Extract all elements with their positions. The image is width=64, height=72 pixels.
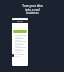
button[interactable] — [13, 50, 27, 53]
button[interactable] — [13, 41, 27, 44]
button[interactable] — [13, 47, 27, 50]
staticText: Turn your idea into a real business — [22, 4, 43, 15]
button[interactable] — [13, 38, 27, 41]
button[interactable] — [13, 30, 27, 33]
button[interactable] — [13, 44, 27, 47]
button[interactable] — [13, 35, 27, 38]
button[interactable]: Open preview — [12, 54, 14, 57]
